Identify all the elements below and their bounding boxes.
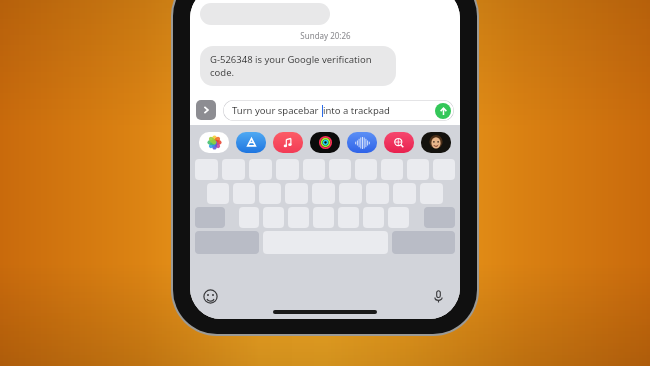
- button[interactable]: Key: [303, 159, 325, 180]
- button[interactable]: Key: [288, 207, 309, 228]
- button[interactable]: Key: [276, 159, 299, 180]
- button[interactable]: Key: [313, 207, 334, 228]
- button[interactable]: Key: [207, 183, 229, 204]
- button[interactable]: Key: [338, 207, 359, 228]
- button[interactable]: Key: [259, 183, 281, 204]
- button[interactable]: Key: [329, 159, 351, 180]
- button[interactable]: Dictation: [428, 286, 448, 306]
- button[interactable]: Key: [195, 159, 218, 180]
- button[interactable]: Key: [285, 183, 308, 204]
- button[interactable]: App Store: [232, 129, 269, 155]
- button[interactable]: Fitness: [306, 129, 343, 155]
- staticText: Sunday 20:26: [300, 30, 351, 41]
- button[interactable]: Photos: [196, 129, 232, 155]
- staticText: Turn your spacebar: [232, 104, 322, 117]
- button[interactable]: Key: [263, 207, 284, 228]
- staticText: G-526348 is your Google verification cod…: [210, 53, 372, 79]
- button[interactable]: Key: [433, 159, 455, 180]
- button[interactable]: Send: [435, 103, 451, 119]
- button[interactable]: Voice: [343, 129, 380, 155]
- button[interactable]: Key: [222, 159, 245, 180]
- button[interactable]: Key: [355, 159, 377, 180]
- button[interactable]: Emoji: [200, 286, 220, 306]
- button[interactable]: Music: [269, 129, 306, 155]
- button[interactable]: Key: [312, 183, 335, 204]
- button[interactable]: Key: [407, 159, 429, 180]
- button[interactable]: Key: [233, 183, 255, 204]
- button[interactable]: Key: [420, 183, 443, 204]
- staticText: into a trackpad: [323, 104, 390, 117]
- button[interactable]: Key: [249, 159, 272, 180]
- button[interactable]: Key: [366, 183, 389, 204]
- button[interactable]: Key: [388, 207, 409, 228]
- button[interactable]: Key: [381, 159, 403, 180]
- button[interactable]: Show apps: [196, 100, 216, 120]
- button[interactable]: Memoji: [417, 129, 454, 155]
- button[interactable]: Key: [239, 207, 259, 228]
- button[interactable]: Images: [380, 129, 417, 155]
- button[interactable]: Key: [363, 207, 384, 228]
- button[interactable]: Turn your spacebar: [223, 100, 454, 121]
- button[interactable]: Key: [393, 183, 416, 204]
- button[interactable]: Key: [339, 183, 362, 204]
